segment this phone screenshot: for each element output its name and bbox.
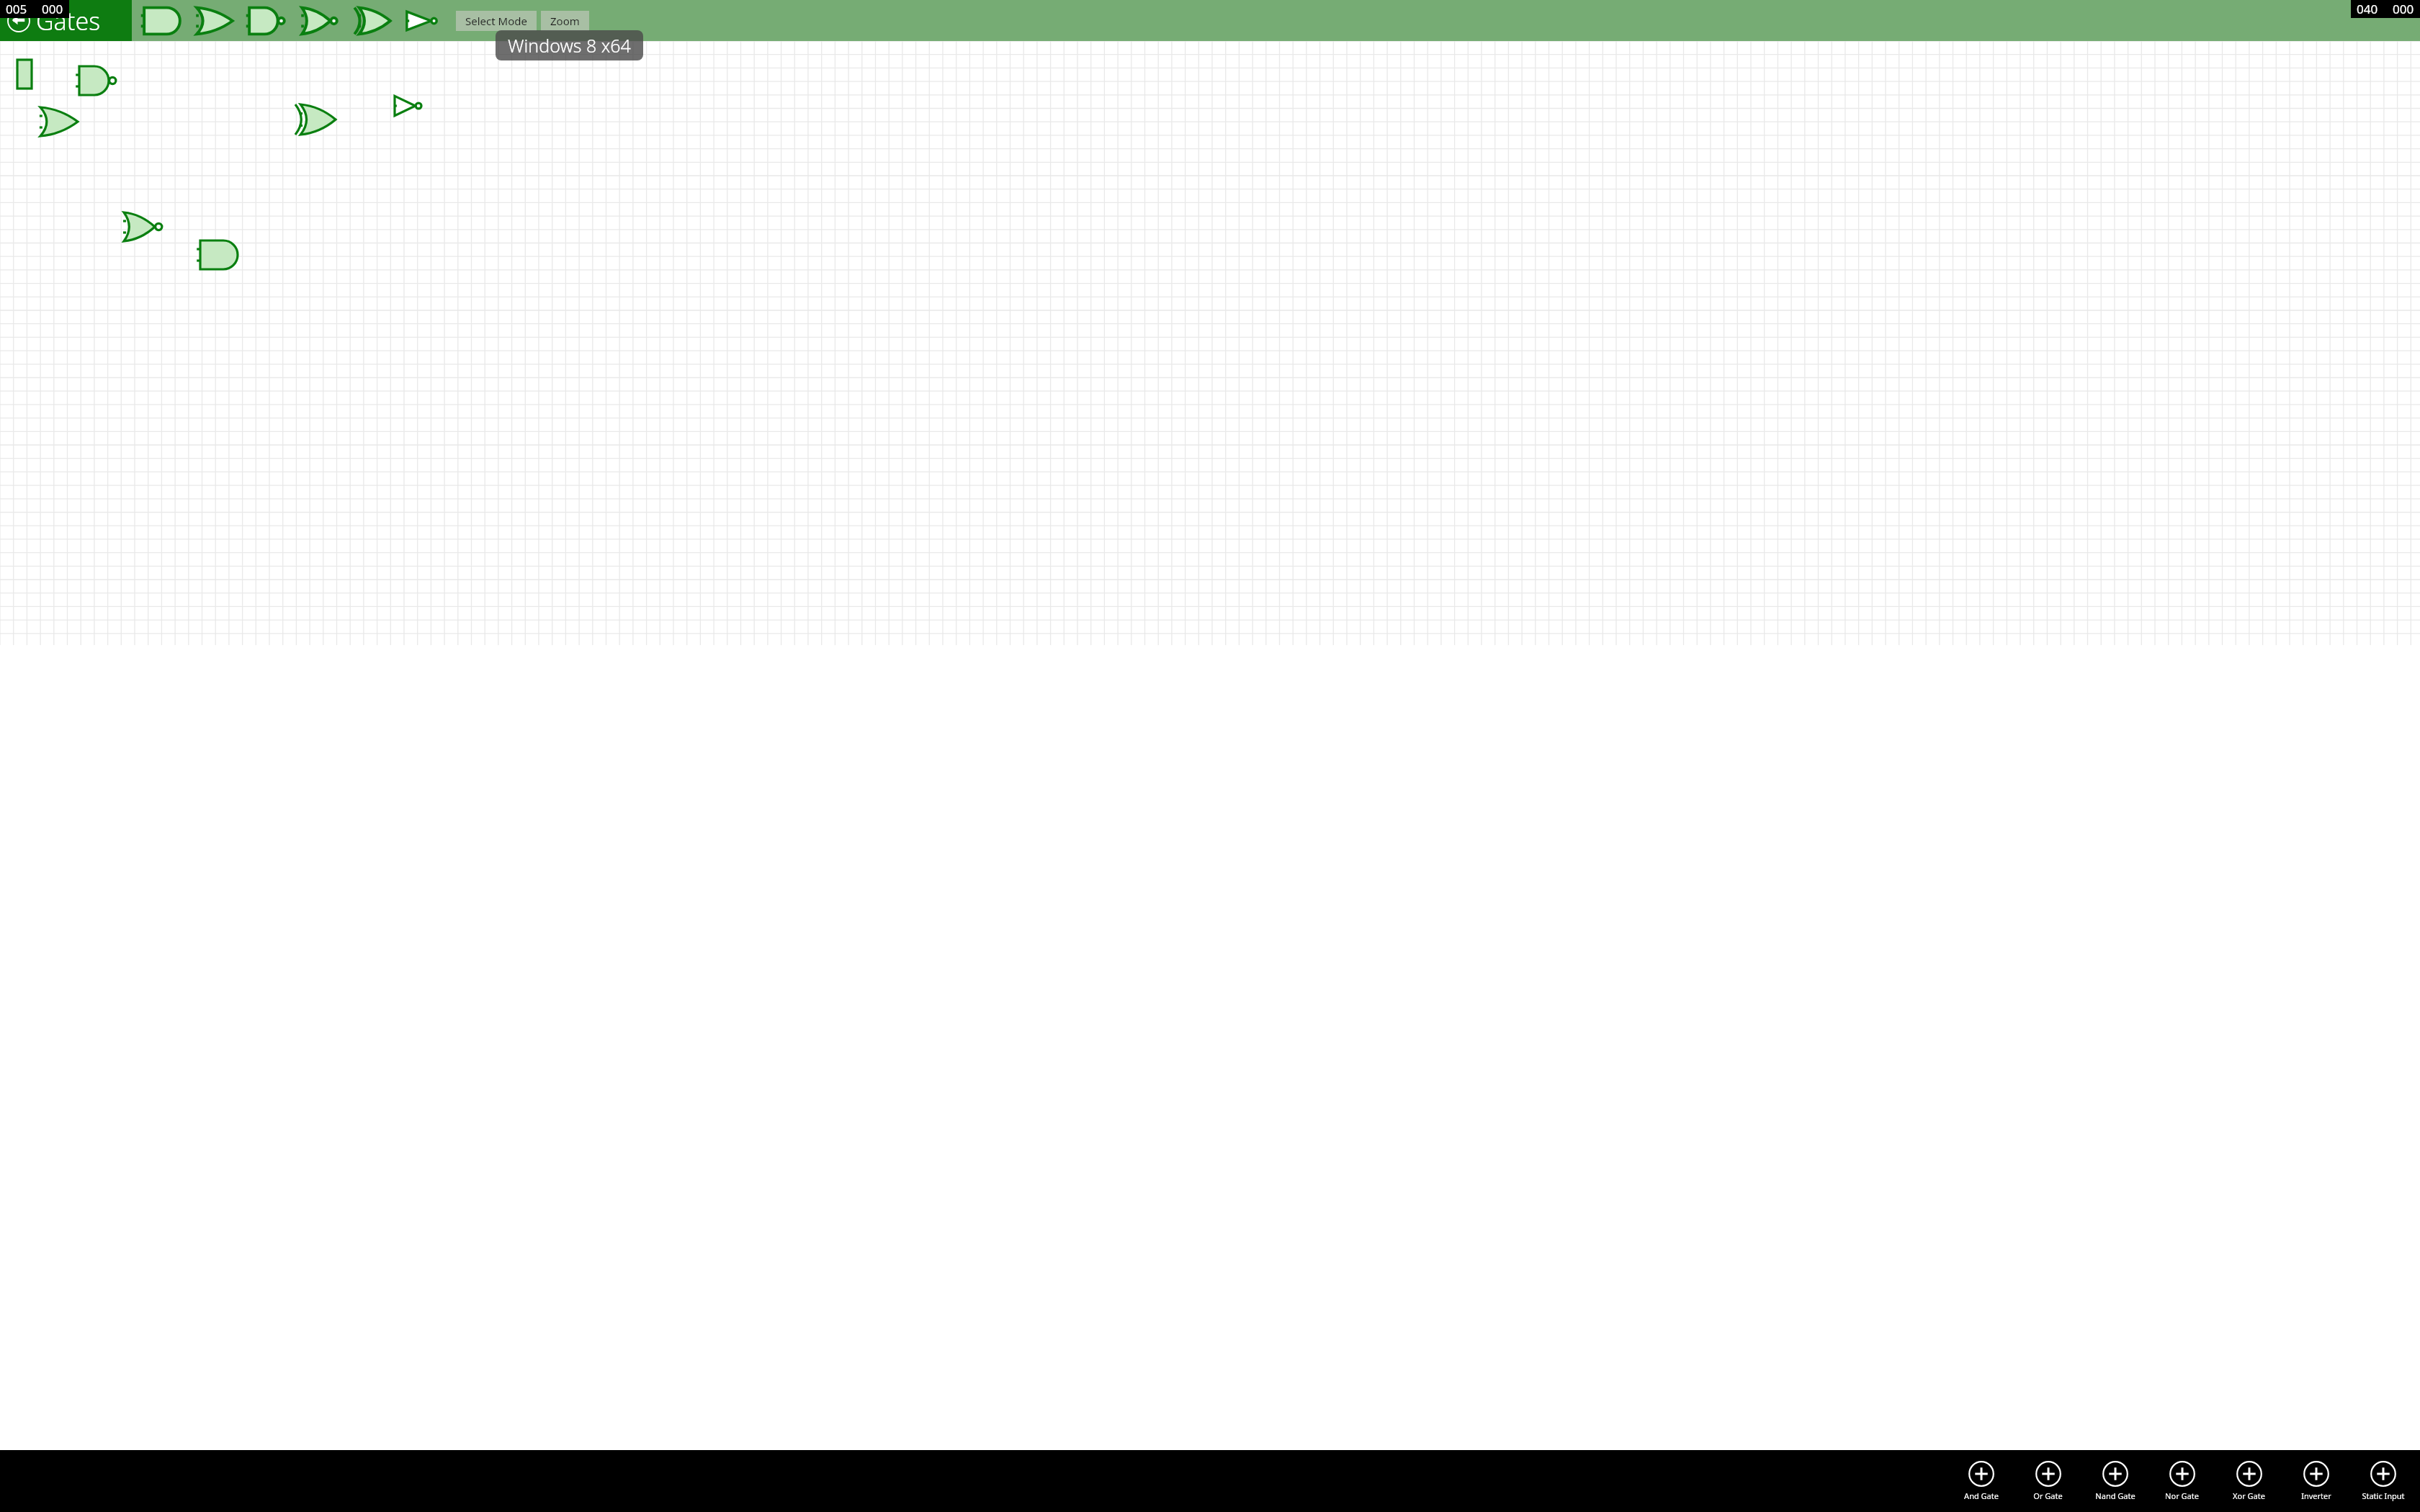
button[interactable]: Nand Gate [248, 4, 287, 37]
staticText: 005 [6, 1, 27, 17]
button[interactable]: Or Gate [2015, 1459, 2081, 1503]
staticText: Static Input [2362, 1490, 2405, 1501]
button[interactable]: Gates [0, 0, 132, 41]
button[interactable]: Nor Gate [2148, 1459, 2215, 1503]
button[interactable]: Static Input [2349, 1459, 2416, 1503]
button[interactable]: Select Mode [456, 11, 537, 31]
staticText: Select Mode [465, 14, 527, 28]
staticText: Nor Gate [2165, 1490, 2199, 1501]
button[interactable]: Xor Gate [2215, 1459, 2282, 1503]
staticText: Xor Gate [2233, 1490, 2265, 1501]
staticText: Or Gate [2033, 1490, 2063, 1501]
button[interactable]: Or Gate [195, 4, 234, 37]
button[interactable]: Nand Gate [2081, 1459, 2148, 1503]
button[interactable]: And Gate [143, 4, 181, 37]
staticText: 000 [2393, 1, 2414, 17]
staticText: Zoom [550, 14, 580, 28]
button[interactable]: And Gate [1948, 1459, 2015, 1503]
button[interactable]: Xor Gate [353, 4, 392, 37]
staticText: 000 [42, 1, 63, 17]
staticText: Nand Gate [2095, 1490, 2136, 1501]
staticText: 040 [2357, 1, 2378, 17]
button[interactable]: Inverter [405, 6, 439, 35]
button[interactable]: Nor Gate [300, 4, 339, 37]
staticText: Inverter [2301, 1490, 2331, 1501]
staticText: Gates [36, 4, 101, 37]
button[interactable]: Zoom [541, 11, 589, 31]
button[interactable]: Inverter [2282, 1459, 2349, 1503]
staticText: Windows 8 x64 [508, 33, 631, 58]
staticText: And Gate [1964, 1490, 1999, 1501]
